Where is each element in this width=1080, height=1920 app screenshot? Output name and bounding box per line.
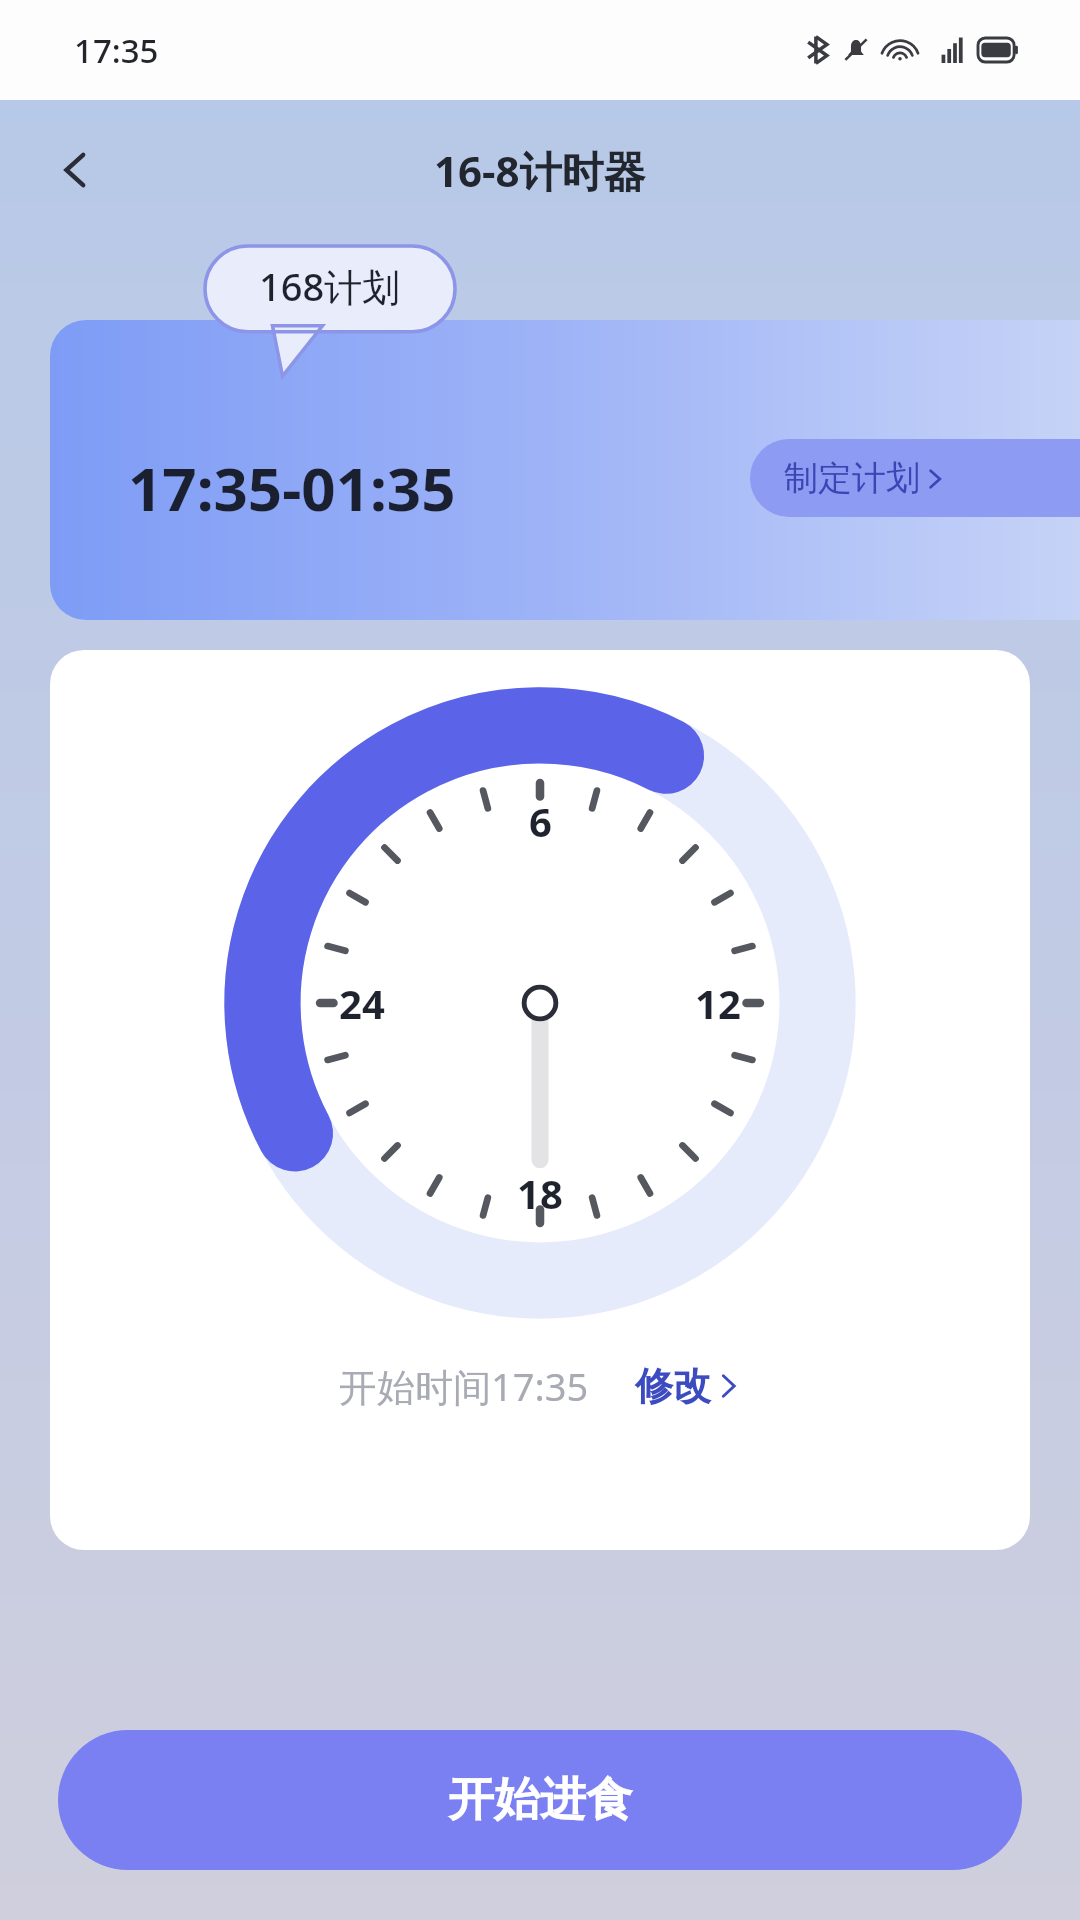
staticText: 12 (695, 976, 741, 1030)
staticText: 开始进食 (448, 1771, 632, 1829)
button[interactable]: 17:35-01:35 (50, 320, 1080, 620)
staticText: 17:35-01:35 (128, 447, 456, 529)
staticText: 16-8计时器 (434, 142, 646, 199)
staticText: 制定计划 (784, 457, 920, 500)
staticText: 17:35 (74, 28, 159, 73)
staticText: 开始时间17:35 (339, 1360, 589, 1412)
button[interactable]: 开始进食 (58, 1730, 1022, 1870)
staticText: 18 (517, 1166, 563, 1220)
button[interactable]: 制定计划 (750, 439, 1080, 517)
staticText: 修改 (635, 1362, 711, 1410)
staticText: 24 (339, 976, 385, 1030)
button[interactable]: 修改 (635, 1362, 741, 1410)
staticText: 6 (529, 794, 552, 848)
staticText: 168计划 (259, 260, 401, 312)
button[interactable]: Back (36, 130, 116, 210)
